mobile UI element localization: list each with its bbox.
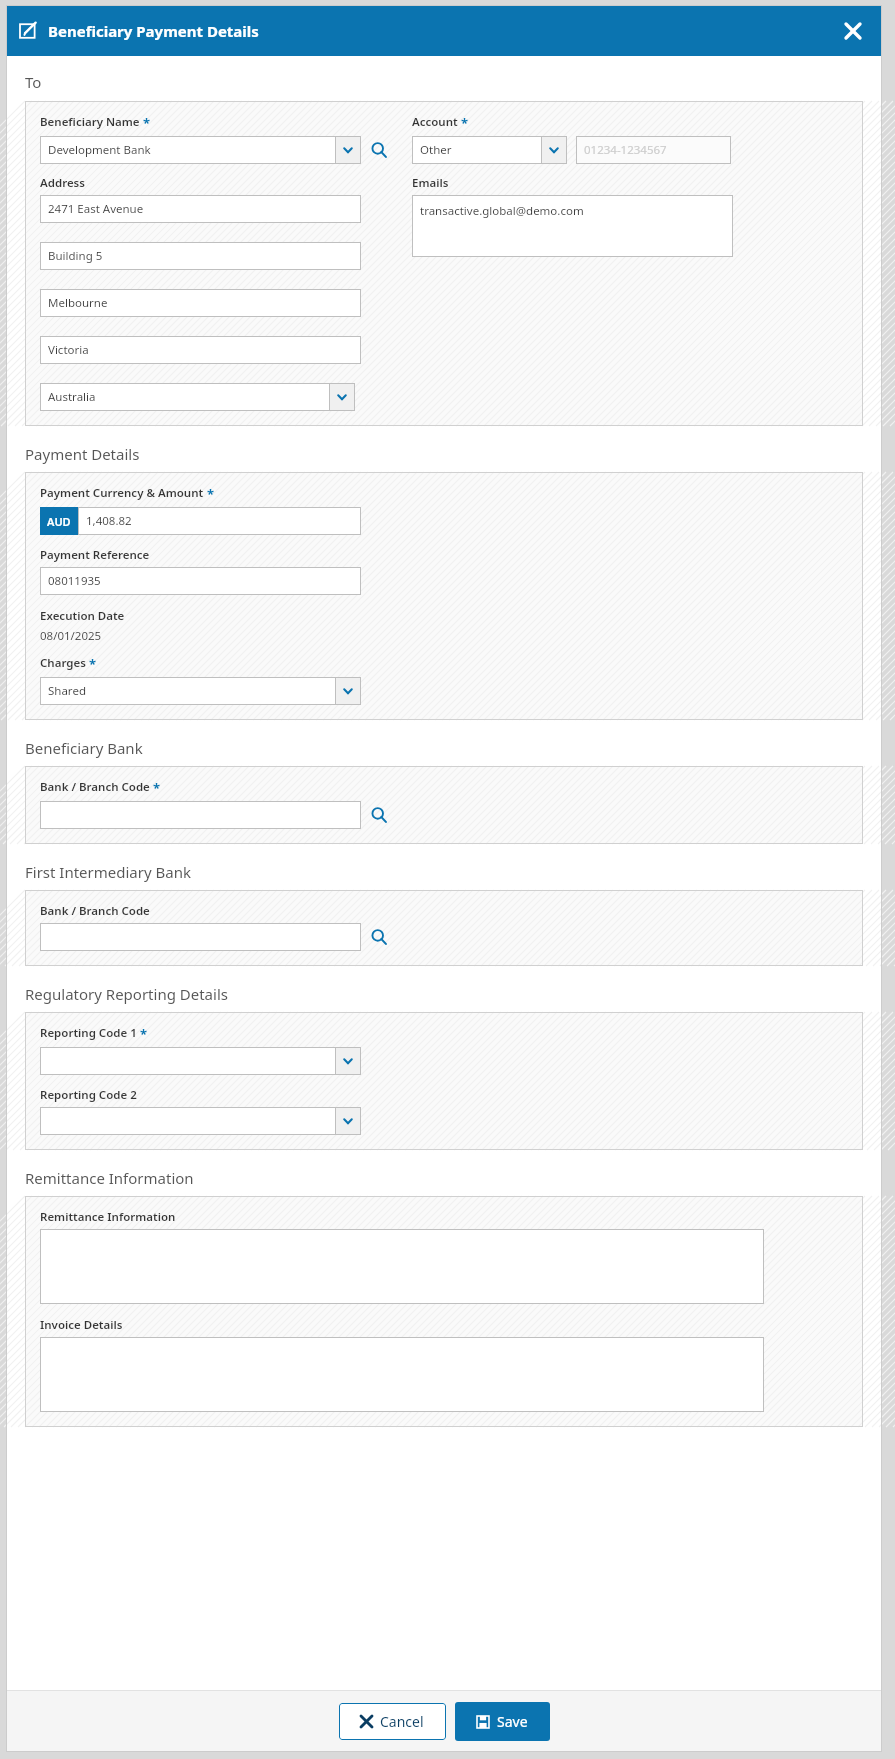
- staticText: Melbourne: [48, 295, 108, 311]
- button[interactable]: Victoria: [40, 336, 361, 364]
- staticText: Reporting Code 2: [40, 1087, 137, 1103]
- staticText: Beneficiary Name: [40, 114, 140, 130]
- staticText: 08011935: [48, 573, 101, 589]
- staticText: Bank / Branch Code: [40, 779, 150, 795]
- staticText: *: [143, 114, 151, 132]
- staticText: Payment Details: [25, 444, 140, 464]
- button[interactable]: Close: [838, 16, 868, 46]
- staticText: Bank / Branch Code: [40, 903, 150, 919]
- staticText: Regulatory Reporting Details: [25, 984, 228, 1004]
- staticText: To: [25, 72, 42, 92]
- staticText: *: [89, 655, 97, 673]
- button[interactable]: [40, 1047, 361, 1075]
- staticText: Payment Currency & Amount: [40, 485, 204, 501]
- staticText: Building 5: [48, 248, 103, 264]
- button[interactable]: Building 5: [40, 242, 361, 270]
- staticText: Australia: [48, 389, 96, 405]
- staticText: Shared: [48, 683, 86, 699]
- staticText: First Intermediary Bank: [25, 862, 191, 882]
- button[interactable]: [40, 1337, 764, 1412]
- staticText: transactive.global@demo.com: [420, 203, 584, 219]
- staticText: Save: [497, 1712, 528, 1731]
- button[interactable]: Cancel: [339, 1703, 446, 1740]
- staticText: Victoria: [48, 342, 89, 358]
- staticText: Payment Reference: [40, 547, 150, 563]
- button[interactable]: [40, 1229, 764, 1304]
- staticText: 1,408.82: [86, 513, 132, 529]
- button[interactable]: Shared: [40, 677, 361, 705]
- staticText: Reporting Code 1: [40, 1025, 137, 1041]
- staticText: 01234-1234567: [584, 142, 667, 158]
- button[interactable]: 01234-1234567: [576, 136, 731, 164]
- staticText: Invoice Details: [40, 1317, 123, 1333]
- button[interactable]: 2471 East Avenue: [40, 195, 361, 223]
- staticText: Account: [412, 114, 458, 130]
- button[interactable]: Search: [366, 924, 392, 950]
- staticText: Development Bank: [48, 142, 151, 158]
- button[interactable]: Development Bank: [40, 136, 361, 164]
- button[interactable]: Other: [412, 136, 567, 164]
- staticText: Emails: [412, 175, 449, 191]
- staticText: Address: [40, 175, 85, 191]
- button[interactable]: Australia: [40, 383, 355, 411]
- staticText: Cancel: [380, 1712, 424, 1731]
- staticText: *: [140, 1025, 148, 1043]
- button[interactable]: transactive.global@demo.com: [412, 195, 733, 257]
- staticText: 2471 East Avenue: [48, 201, 144, 217]
- staticText: Remittance Information: [25, 1168, 194, 1188]
- staticText: *: [207, 485, 215, 503]
- staticText: *: [461, 114, 469, 132]
- staticText: *: [153, 779, 161, 797]
- button[interactable]: [40, 923, 361, 951]
- button[interactable]: [40, 1107, 361, 1135]
- button[interactable]: 1,408.82: [78, 507, 361, 535]
- button[interactable]: Melbourne: [40, 289, 361, 317]
- staticText: Execution Date: [40, 608, 125, 624]
- staticText: Beneficiary Payment Details: [48, 21, 259, 41]
- staticText: Beneficiary Bank: [25, 738, 143, 758]
- button[interactable]: Search: [366, 137, 392, 163]
- button[interactable]: Search: [366, 802, 392, 828]
- staticText: AUD: [47, 514, 71, 529]
- button[interactable]: [40, 801, 361, 829]
- button[interactable]: 08011935: [40, 567, 361, 595]
- staticText: Other: [420, 142, 452, 158]
- staticText: 08/01/2025: [40, 628, 102, 644]
- staticText: Charges: [40, 655, 86, 671]
- staticText: Remittance Information: [40, 1209, 176, 1225]
- button[interactable]: Save: [455, 1702, 550, 1741]
